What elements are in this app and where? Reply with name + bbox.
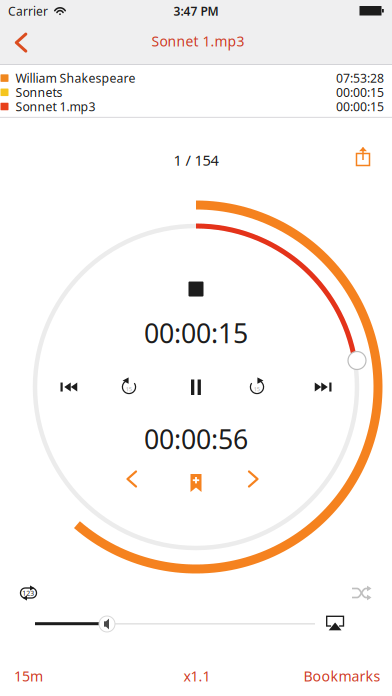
staticText: 15 <box>126 385 132 393</box>
button[interactable]: Stop <box>181 274 211 304</box>
staticText: 00:00:56 <box>144 421 248 457</box>
button[interactable]: Skip back 15 seconds <box>112 370 146 404</box>
staticText: 1 / 154 <box>173 150 218 170</box>
staticText: Sonnet 1.mp3 <box>15 98 95 115</box>
button[interactable]: x1.1 <box>168 659 226 693</box>
staticText: x1.1 <box>183 666 210 686</box>
staticText: 07:53:28 <box>336 70 384 86</box>
button[interactable]: AirPlay <box>321 610 349 636</box>
staticText: 15m <box>14 666 43 686</box>
staticText: 00:00:15 <box>144 315 248 351</box>
staticText: Bookmarks <box>303 666 380 686</box>
button[interactable]: Next track <box>305 370 345 404</box>
button[interactable]: Pause <box>176 370 216 404</box>
button[interactable]: Next bookmark <box>233 468 263 498</box>
staticText: Carrier <box>8 3 48 19</box>
button[interactable]: Repeat <box>11 578 45 608</box>
button[interactable]: Skip forward 15 seconds <box>240 370 274 404</box>
button[interactable]: Share <box>346 140 380 174</box>
button[interactable]: Back <box>0 25 38 61</box>
button[interactable]: Previous bookmark <box>122 468 152 498</box>
button[interactable]: Add bookmark <box>181 468 211 498</box>
staticText: William Shakespeare <box>15 70 135 86</box>
staticText: 3:47 PM <box>173 3 218 19</box>
button[interactable]: Shuffle <box>345 578 379 608</box>
staticText: 15 <box>254 385 260 393</box>
staticText: Sonnets <box>15 84 62 101</box>
button[interactable]: 15m <box>0 659 57 693</box>
staticText: 123 <box>22 588 34 598</box>
staticText: 00:00:15 <box>336 84 384 101</box>
button[interactable]: Previous track <box>47 370 87 404</box>
staticText: 00:00:15 <box>336 98 384 115</box>
button[interactable]: Bookmarks <box>296 659 388 693</box>
staticText: Sonnet 1.mp3 <box>151 32 244 50</box>
